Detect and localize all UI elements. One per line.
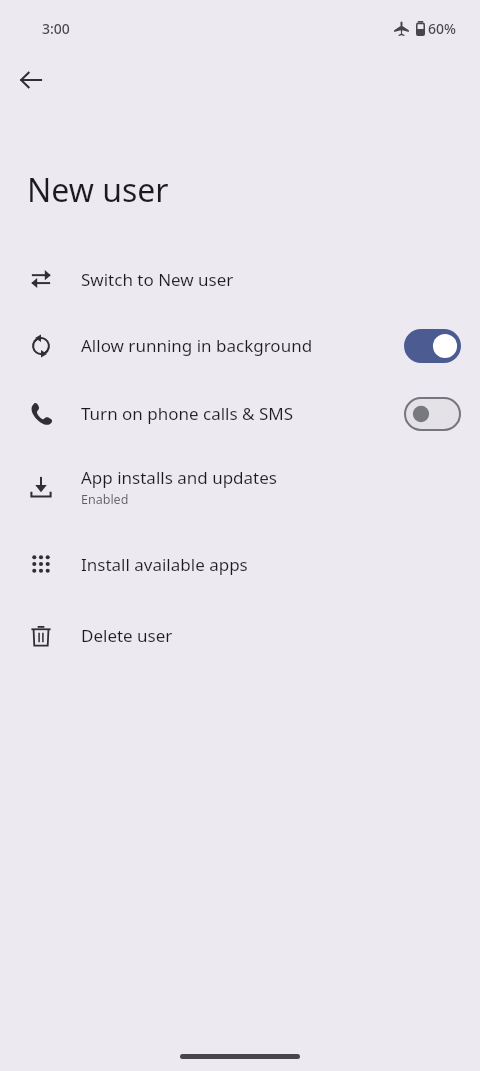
button[interactable]: Back [7, 56, 55, 104]
button[interactable]: Turn on phone calls & SMS [0, 379, 480, 448]
button[interactable]: App installs and updates [0, 448, 480, 526]
staticText: Install available apps [81, 553, 248, 576]
staticText: Delete user [81, 624, 173, 647]
button[interactable]: Switch to New user [0, 246, 480, 312]
button[interactable]: Install available apps [0, 526, 480, 602]
staticText: Enabled [81, 491, 129, 508]
staticText: Turn on phone calls & SMS [81, 402, 294, 425]
staticText: 60% [428, 19, 456, 38]
button[interactable]: Toggle on [404, 329, 461, 363]
button[interactable]: Toggle off [404, 397, 461, 431]
staticText: App installs and updates [81, 466, 277, 489]
staticText: Allow running in background [81, 334, 313, 357]
button[interactable]: Allow running in background [0, 312, 480, 379]
staticText: Switch to New user [81, 268, 234, 291]
staticText: New user [27, 168, 169, 212]
staticText: 3:00 [42, 19, 70, 38]
button[interactable]: Delete user [0, 602, 480, 669]
